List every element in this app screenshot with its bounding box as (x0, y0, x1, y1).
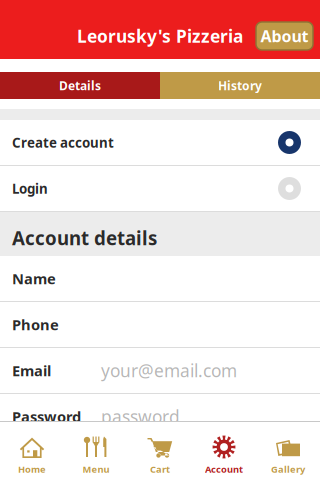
staticText: Leorusky's Pizzeria (77, 24, 243, 47)
button[interactable]: Menu (64, 422, 128, 480)
button[interactable]: Account (192, 422, 256, 480)
staticText: Menu (82, 463, 109, 475)
staticText: Login (12, 180, 48, 197)
staticText: Cart (150, 463, 170, 475)
button[interactable]: Phone (0, 302, 320, 347)
button[interactable]: Cart (128, 422, 192, 480)
button[interactable]: Email (0, 348, 320, 393)
button[interactable]: Password (0, 394, 320, 439)
button[interactable]: Name (0, 256, 320, 301)
button[interactable]: Login (0, 166, 320, 211)
staticText: Account details (12, 226, 157, 250)
button[interactable]: Gallery (256, 422, 320, 480)
staticText: your@email.com (101, 359, 237, 382)
button[interactable]: Home (0, 422, 64, 480)
staticText: password (101, 405, 180, 428)
staticText: Name (12, 269, 56, 288)
staticText: History (218, 77, 262, 93)
staticText: Password (12, 407, 81, 426)
button[interactable]: Create account (0, 120, 320, 165)
staticText: Create account (12, 134, 114, 151)
staticText: Email (12, 361, 51, 380)
button[interactable]: Details (0, 72, 160, 99)
button[interactable]: About (256, 22, 313, 50)
staticText: Home (18, 463, 46, 475)
staticText: Phone (12, 315, 59, 334)
staticText: Details (59, 77, 101, 93)
staticText: Account (205, 463, 243, 475)
staticText: About (260, 25, 308, 47)
staticText: Gallery (271, 463, 305, 475)
button[interactable]: History (160, 72, 320, 99)
